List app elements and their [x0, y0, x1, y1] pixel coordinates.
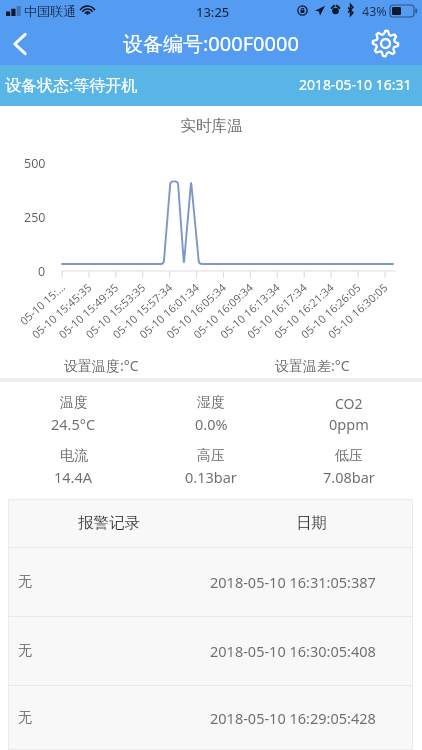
staticText: 设备编号:000F0000 — [123, 30, 299, 57]
staticText: 高压 — [197, 447, 225, 465]
staticText: 2018-05-10 16:30:05:408 — [210, 641, 376, 661]
staticText: 设置温度:°C — [64, 356, 139, 375]
staticText: 无 — [18, 709, 32, 727]
staticText: 设备状态:等待开机 — [5, 74, 138, 96]
staticText: 2018-05-10 16:31:05:387 — [210, 572, 376, 592]
staticText: 日期 — [296, 513, 327, 533]
staticText: 低压 — [335, 447, 363, 465]
staticText: 2018-05-10 16:29:05:428 — [210, 708, 376, 728]
staticText: 0ppm — [329, 414, 369, 434]
staticText: 电流 — [60, 447, 88, 465]
staticText: 43% — [362, 3, 387, 20]
staticText: 无 — [18, 642, 32, 660]
staticText: 14.4A — [54, 467, 93, 487]
button[interactable]: 无 — [8, 686, 413, 750]
staticText: 13:25 — [196, 3, 230, 21]
staticText: 中国联通 — [24, 3, 76, 19]
staticText: 报警记录 — [78, 513, 140, 533]
button[interactable]: Settings — [349, 22, 422, 65]
staticText: 24.5°C — [51, 414, 96, 434]
staticText: CO2 — [335, 394, 363, 413]
staticText: 温度 — [60, 394, 88, 412]
button[interactable]: Back — [0, 22, 39, 65]
staticText: 0.0% — [195, 414, 228, 434]
staticText: 2018-05-10 16:31 — [299, 75, 412, 94]
button[interactable]: 无 — [8, 617, 413, 685]
staticText: 湿度 — [197, 394, 225, 412]
staticText: 0.13bar — [185, 467, 237, 487]
staticText: 设置温差:°C — [275, 356, 350, 375]
button[interactable]: 无 — [8, 548, 413, 616]
staticText: 无 — [18, 573, 32, 591]
staticText: 7.08bar — [323, 467, 375, 487]
